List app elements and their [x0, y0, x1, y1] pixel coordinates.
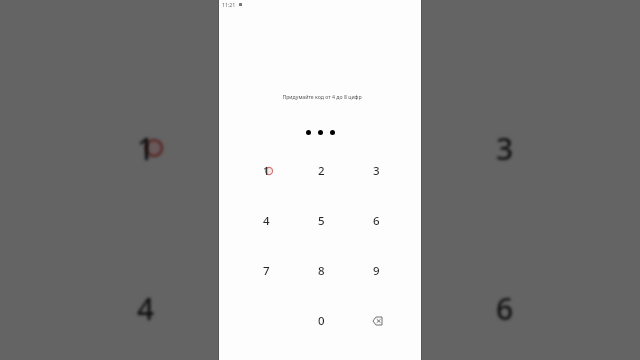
staticText: 6: [496, 288, 514, 329]
button[interactable]: 9: [349, 246, 404, 296]
staticText: 3: [373, 163, 380, 179]
button[interactable]: 1: [239, 146, 294, 196]
staticText: 9: [373, 263, 380, 279]
button[interactable]: 4: [239, 196, 294, 246]
staticText: 3: [496, 128, 514, 169]
staticText: 2: [318, 163, 325, 179]
staticText: 8: [318, 263, 325, 279]
staticText: 1: [263, 163, 270, 179]
button[interactable]: 6: [349, 196, 404, 246]
staticText: 11:21: [222, 1, 236, 8]
staticText: 4: [137, 288, 155, 329]
staticText: Придумайте код от 4 до 8 цифр: [282, 93, 362, 100]
staticText: 0: [318, 313, 325, 329]
button[interactable]: 3: [349, 146, 404, 196]
button[interactable]: 2: [294, 146, 349, 196]
other: Backspace: [367, 311, 387, 331]
button[interactable]: 7: [239, 246, 294, 296]
staticText: 4: [263, 213, 270, 229]
button[interactable]: 8: [294, 246, 349, 296]
staticText: 5: [318, 213, 325, 229]
button[interactable]: 5: [294, 196, 349, 246]
staticText: 1: [137, 128, 155, 169]
staticText: 7: [263, 263, 270, 279]
button[interactable]: Backspace: [349, 296, 404, 346]
staticText: 6: [373, 213, 380, 229]
button[interactable]: 0: [294, 296, 349, 346]
